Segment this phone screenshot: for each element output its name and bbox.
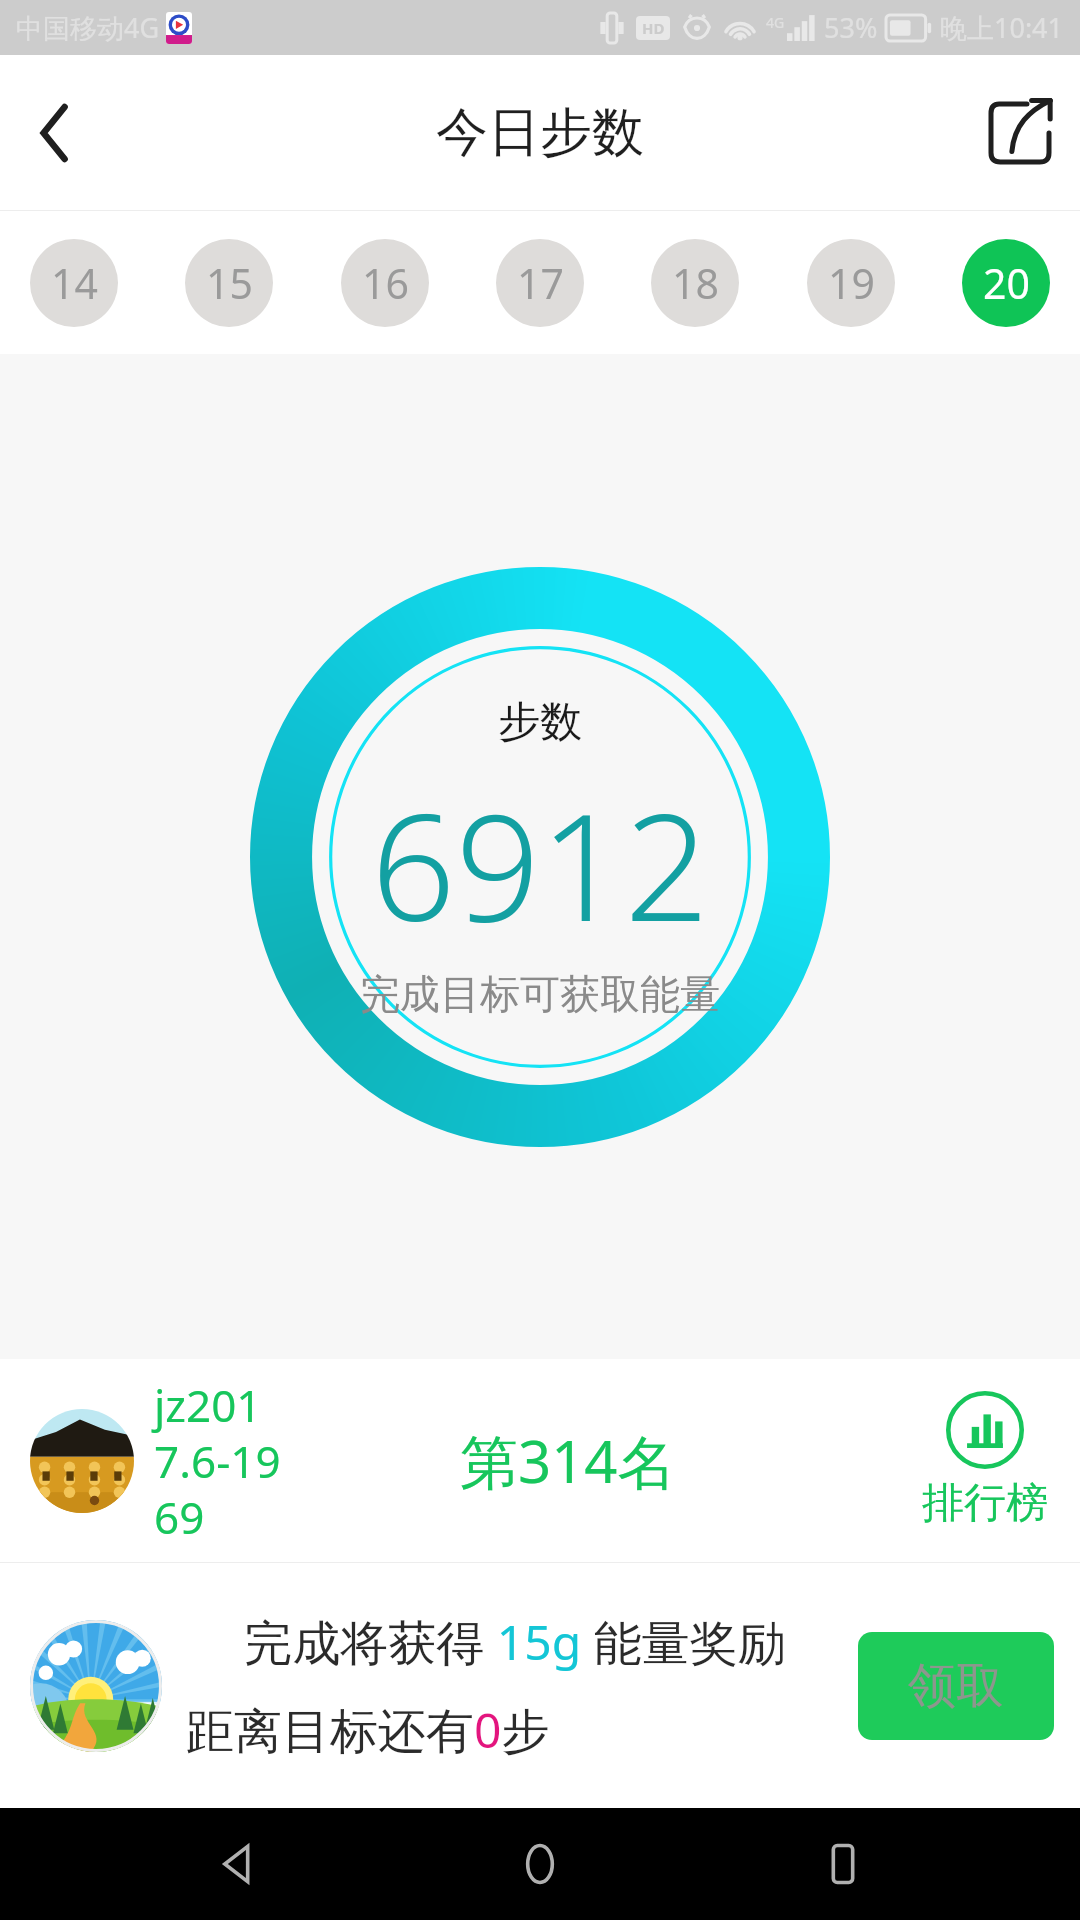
button[interactable]: 领取 <box>858 1632 1054 1740</box>
staticText: 16 <box>362 255 409 311</box>
staticText: 4G <box>766 13 785 32</box>
staticText: 19 <box>828 255 875 311</box>
staticText: 步数 <box>498 696 582 749</box>
button[interactable]: Back <box>0 78 110 188</box>
staticText: 第314名 <box>460 1421 676 1500</box>
staticText: 15 <box>206 255 253 311</box>
button[interactable]: 16 <box>341 239 429 327</box>
staticText: 中国移动4G <box>16 9 160 46</box>
staticText: 排行榜 <box>922 1477 1048 1530</box>
staticText: 今日步数 <box>436 100 644 166</box>
button[interactable]: 19 <box>807 239 895 327</box>
button[interactable]: Back <box>173 1808 303 1920</box>
staticText: 53% <box>824 9 878 46</box>
button[interactable]: Home <box>475 1808 605 1920</box>
button[interactable]: 17 <box>496 239 584 327</box>
staticText: 18 <box>672 255 719 311</box>
staticText: 17 <box>517 255 564 311</box>
button[interactable]: 排行榜 <box>914 1391 1056 1530</box>
button[interactable]: 18 <box>651 239 739 327</box>
staticText: 完成目标可获取能量 <box>360 969 720 1019</box>
staticText: 6912 <box>371 763 710 965</box>
button[interactable]: jz2017.6-1969 <box>0 1359 1080 1562</box>
staticText: 完成将获得 15g 能量奖励 <box>186 1609 844 1675</box>
button[interactable]: Share <box>960 73 1080 193</box>
staticText: 14 <box>51 255 98 311</box>
button[interactable]: Recents <box>778 1808 908 1920</box>
staticText: 领取 <box>908 1656 1004 1716</box>
staticText: 20 <box>983 255 1030 311</box>
staticText: 距离目标还有0步 <box>186 1697 550 1763</box>
staticText: HD <box>642 18 665 38</box>
staticText: 晚上10:41 <box>940 9 1064 46</box>
button[interactable]: 15 <box>185 239 273 327</box>
button[interactable]: 20 <box>962 239 1050 327</box>
staticText: jz2017.6-1969 <box>154 1375 284 1547</box>
button[interactable]: 14 <box>30 239 118 327</box>
